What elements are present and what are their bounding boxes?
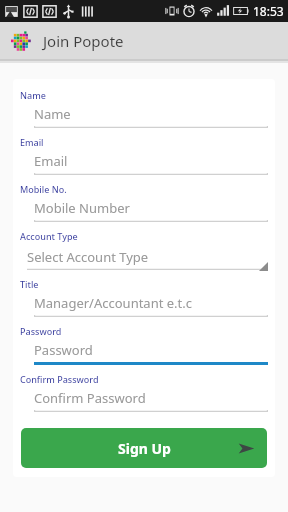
button[interactable]: Email <box>13 136 275 183</box>
button[interactable]: Password <box>13 325 275 373</box>
staticText: Password <box>20 325 62 337</box>
staticText: Title <box>20 278 39 290</box>
staticText: Sign Up <box>118 439 171 458</box>
button[interactable]: Mobile No. <box>13 183 275 230</box>
staticText: Manager/Accountant e.t.c <box>34 294 192 312</box>
button[interactable]: Account Type <box>13 230 275 278</box>
staticText: Email <box>20 136 44 148</box>
staticText: Email <box>34 152 68 170</box>
button[interactable]: Title <box>13 278 275 325</box>
staticText: Account Type <box>20 230 78 242</box>
staticText: Confirm Password <box>20 373 99 385</box>
button[interactable]: Confirm Password <box>13 373 275 420</box>
staticText: Confirm Password <box>34 389 146 407</box>
staticText: Password <box>34 341 93 359</box>
staticText: Name <box>34 105 71 123</box>
staticText: Mobile No. <box>20 183 67 195</box>
staticText: Join Popote <box>43 31 124 51</box>
other: Submit <box>238 440 255 457</box>
button[interactable]: Name <box>13 89 275 136</box>
staticText: Name <box>20 89 46 101</box>
staticText: 18:53 <box>253 3 284 19</box>
button[interactable]: Sign Up <box>21 428 267 468</box>
staticText: Select Account Type <box>27 248 149 266</box>
staticText: Mobile Number <box>34 199 130 217</box>
